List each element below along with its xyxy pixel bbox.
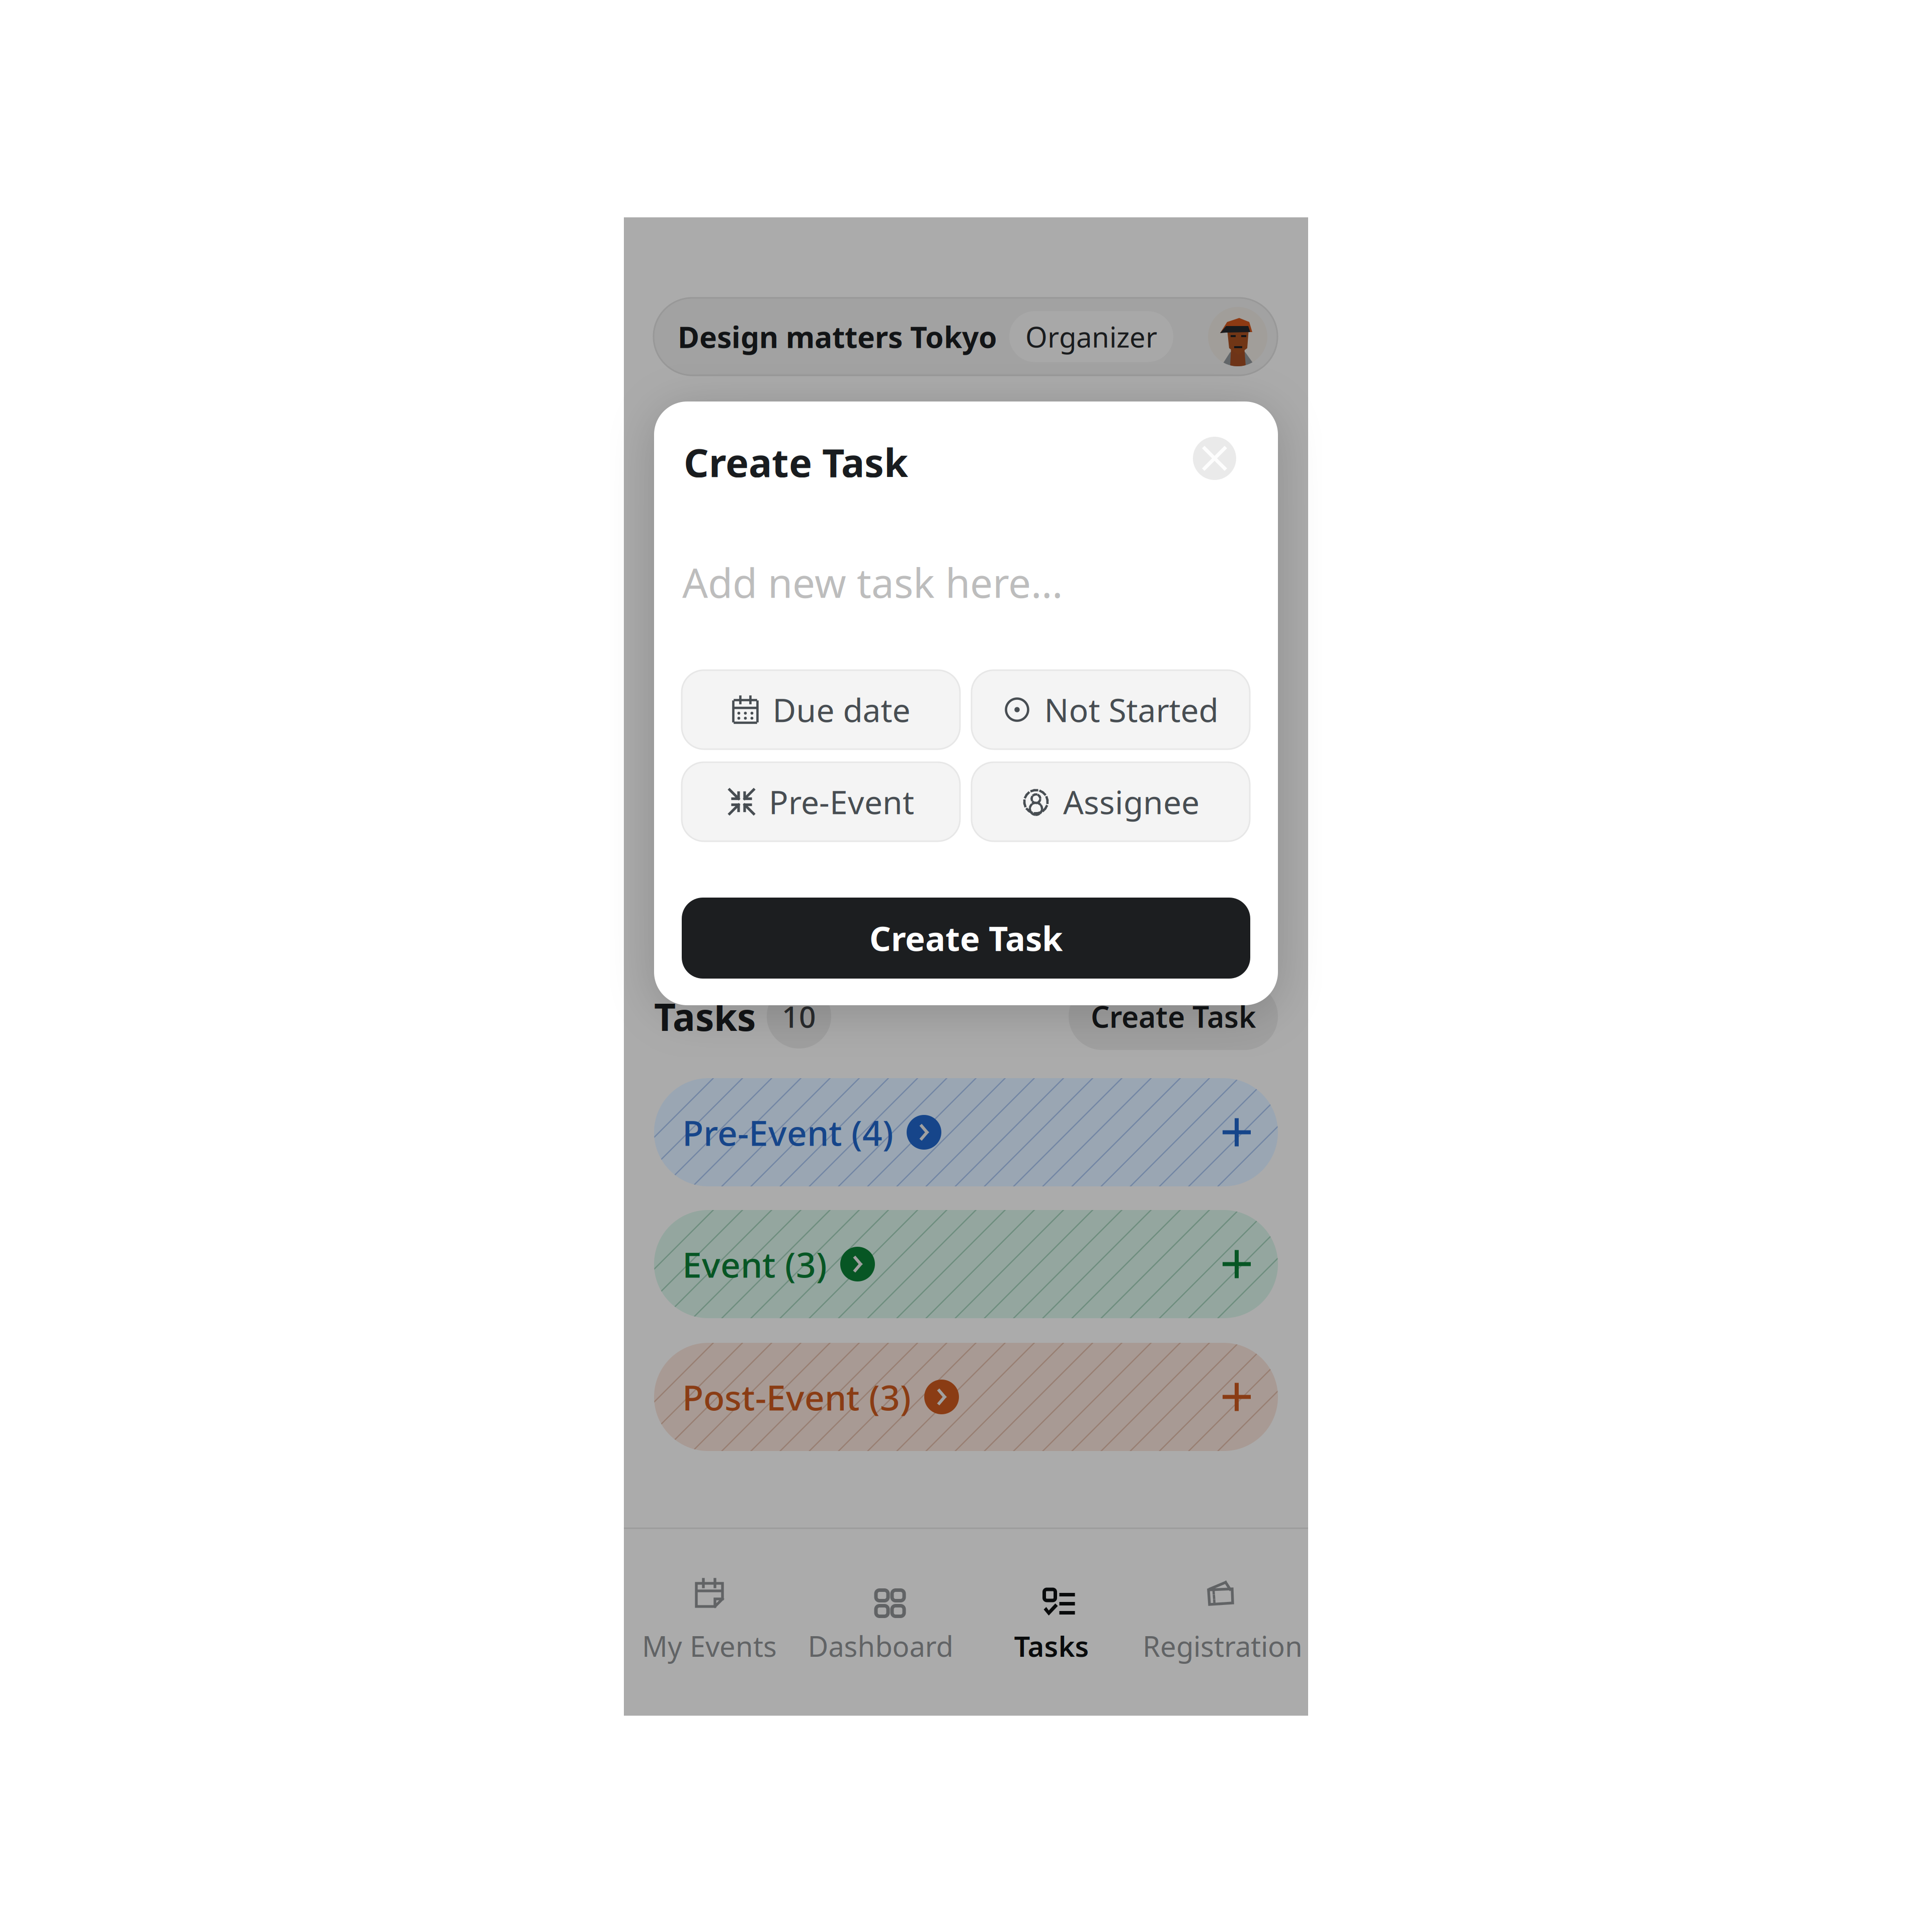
staticText: Tasks	[1014, 1627, 1089, 1665]
button[interactable]: Registration	[1137, 1529, 1308, 1716]
staticText: Tasks	[654, 991, 756, 1041]
staticText: Due date	[773, 688, 910, 731]
button[interactable]: Pre-Event (4)	[654, 1078, 1278, 1186]
button[interactable]: Design matters Tokyo	[654, 298, 1277, 375]
button[interactable]: Assignee	[972, 762, 1250, 841]
staticText: Not Started	[1044, 688, 1218, 731]
staticText: Create Task	[684, 436, 908, 488]
button[interactable]: Dashboard	[795, 1529, 966, 1716]
staticText: Dashboard	[808, 1627, 953, 1665]
staticText: Event (3)	[682, 1241, 827, 1287]
button[interactable]: Event (3)	[654, 1210, 1278, 1318]
staticText: Registration	[1143, 1627, 1303, 1665]
staticText: 10	[782, 997, 816, 1036]
button[interactable]: Due date	[682, 670, 960, 749]
staticText: Assignee	[1063, 780, 1199, 823]
staticText: My Events	[642, 1627, 777, 1665]
staticText: Organizer	[1025, 318, 1157, 355]
button[interactable]: Create Task	[682, 898, 1250, 979]
button[interactable]: Close	[1193, 437, 1236, 480]
button[interactable]: Post-Event (3)	[654, 1343, 1278, 1451]
button[interactable]: Pre-Event	[682, 762, 960, 841]
staticText: Pre-Event (4)	[682, 1109, 894, 1155]
button[interactable]: Tasks	[966, 1529, 1137, 1716]
button[interactable]: Create Task	[1069, 983, 1278, 1050]
staticText: Create Task	[1091, 997, 1256, 1036]
staticText: Pre-Event	[769, 780, 914, 823]
button[interactable]: My Events	[624, 1529, 795, 1716]
staticText: Design matters Tokyo	[678, 317, 997, 356]
staticText: Add new task here...	[682, 555, 1063, 609]
staticText: Post-Event (3)	[682, 1374, 911, 1420]
staticText: Create Task	[869, 916, 1063, 960]
button[interactable]: Not Started	[972, 670, 1250, 749]
